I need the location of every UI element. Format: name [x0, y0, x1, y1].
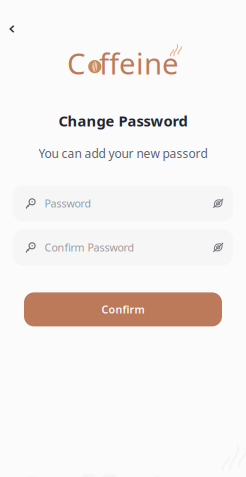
staticText: Confirm Password [45, 240, 135, 254]
button[interactable]: Show Password [210, 195, 226, 212]
staticText: You can add your new passord [38, 145, 207, 161]
staticText: Confirm [101, 302, 144, 316]
button[interactable]: Show Confirm Password [210, 239, 226, 256]
button[interactable]: Back [2, 19, 22, 39]
button[interactable]: Confirm [24, 292, 222, 326]
staticText: C [67, 43, 86, 82]
staticText: Change Password [58, 111, 187, 130]
staticText: ffeine [99, 43, 179, 82]
staticText: Password [45, 196, 92, 210]
